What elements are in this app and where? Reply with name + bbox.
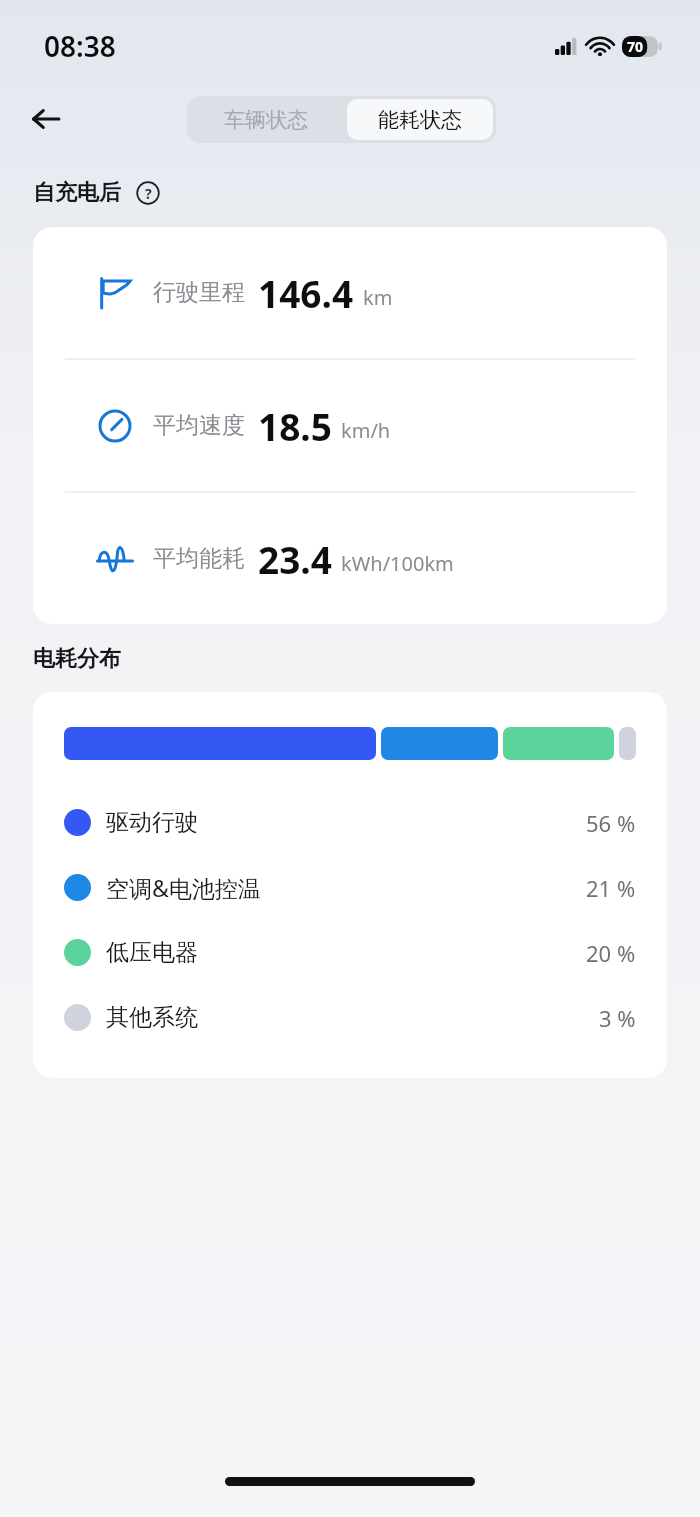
button[interactable]: 其他系统: [33, 985, 667, 1050]
staticText: 其他系统: [106, 1003, 198, 1032]
button[interactable]: 低压电器: [33, 920, 667, 985]
staticText: 146.4: [258, 268, 354, 318]
staticText: 电耗分布: [33, 645, 121, 673]
button[interactable]: 空调&电池控温: [33, 855, 667, 920]
staticText: 3 %: [599, 1003, 636, 1033]
button[interactable]: 平均速度: [33, 360, 667, 491]
button[interactable]: Help: [133, 178, 163, 208]
staticText: 空调&电池控温: [106, 872, 261, 903]
staticText: 平均速度: [153, 411, 245, 440]
staticText: ?: [145, 184, 152, 203]
staticText: 23.4: [258, 534, 332, 584]
staticText: 自充电后: [33, 179, 121, 207]
staticText: 56 %: [586, 808, 636, 838]
staticText: kWh/100km: [341, 550, 454, 577]
button[interactable]: 行驶里程: [33, 227, 667, 358]
button[interactable]: 能耗状态: [347, 99, 493, 140]
staticText: 70: [627, 37, 644, 56]
staticText: 低压电器: [106, 938, 198, 967]
staticText: 车辆状态: [224, 107, 308, 133]
staticText: 21 %: [586, 873, 636, 903]
button[interactable]: Back: [20, 93, 72, 145]
staticText: 驱动行驶: [106, 808, 198, 837]
button[interactable]: 车辆状态: [187, 96, 344, 143]
staticText: 08:38: [44, 27, 116, 65]
staticText: 18.5: [258, 401, 332, 451]
button[interactable]: 驱动行驶: [33, 790, 667, 855]
staticText: 平均能耗: [153, 544, 245, 573]
staticText: 20 %: [586, 938, 636, 968]
staticText: km/h: [341, 417, 391, 444]
button[interactable]: 平均能耗: [33, 493, 667, 624]
staticText: km: [363, 284, 393, 311]
staticText: 行驶里程: [153, 278, 245, 307]
staticText: 能耗状态: [378, 107, 462, 133]
